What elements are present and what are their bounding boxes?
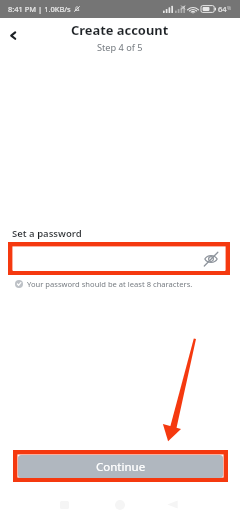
staticText: Your password should be at least 8 chara… <box>27 279 193 289</box>
button[interactable]: Continue <box>18 455 223 478</box>
button[interactable]: Show password <box>204 252 218 266</box>
staticText: Continue <box>96 459 146 475</box>
staticText: 8:41 PM | 1.0KB/s <box>8 4 71 14</box>
button[interactable]: Back <box>1 24 24 47</box>
staticText: Set a password <box>12 227 82 240</box>
staticText: 64 <box>218 4 227 14</box>
staticText: % <box>227 5 232 12</box>
staticText: Create account <box>71 21 169 39</box>
button[interactable]: Show password <box>13 247 225 271</box>
staticText: Step 4 of 5 <box>97 41 143 54</box>
